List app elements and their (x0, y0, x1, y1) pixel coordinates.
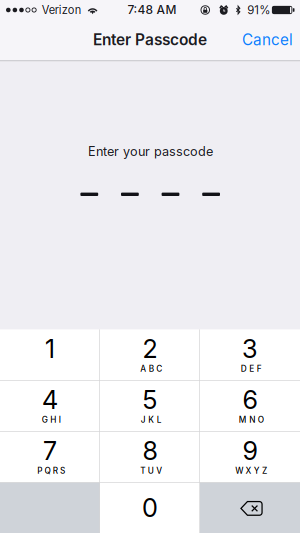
staticText: 4 (42, 384, 58, 415)
staticText: PQRS (37, 466, 65, 476)
staticText: 9 (242, 435, 257, 466)
staticText: MNO (239, 415, 264, 425)
staticText: Enter your passcode (88, 144, 213, 159)
button[interactable]: 6 (200, 380, 300, 431)
staticText: JKL (141, 415, 162, 425)
staticText: 7 (43, 435, 57, 466)
staticText: 7:48 AM (127, 2, 176, 17)
button[interactable]: 4 (0, 380, 100, 431)
button[interactable]: 0 (100, 482, 200, 533)
staticText: 6 (242, 384, 257, 415)
staticText: GHI (42, 415, 61, 425)
staticText: TUV (140, 466, 162, 476)
staticText: 8 (142, 435, 157, 466)
staticText: Enter Passcode (93, 30, 207, 49)
button[interactable]: 8 (100, 431, 200, 482)
button[interactable]: Cancel (244, 20, 291, 62)
button[interactable]: 7 (0, 431, 100, 482)
button[interactable]: 1 (0, 329, 100, 380)
staticText: Cancel (242, 30, 293, 49)
button[interactable]: Delete (200, 482, 300, 533)
staticText: 91% (247, 3, 270, 17)
button[interactable]: 9 (200, 431, 300, 482)
button[interactable]: 2 (100, 329, 200, 380)
staticText: ABC (140, 364, 162, 374)
button[interactable]: 3 (200, 329, 300, 380)
staticText: WXYZ (235, 466, 267, 476)
staticText: 3 (242, 333, 258, 364)
staticText: 0 (142, 493, 158, 523)
staticText: 2 (142, 333, 157, 364)
staticText: 1 (45, 333, 55, 364)
staticText: Verizon (42, 3, 82, 17)
button[interactable]: 5 (100, 380, 200, 431)
staticText: DEF (241, 364, 262, 374)
staticText: 5 (142, 384, 157, 415)
